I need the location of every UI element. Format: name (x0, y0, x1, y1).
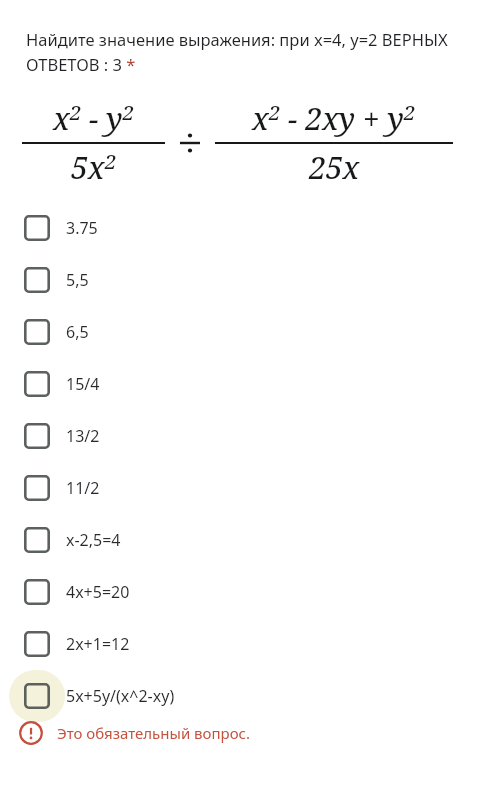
staticText: x2 − y2 (53, 98, 134, 139)
staticText: 6,5 (66, 321, 89, 343)
button[interactable]: 4x+5=20 (0, 566, 500, 618)
staticText: 25x (309, 147, 360, 188)
staticText: 3.75 (66, 217, 98, 239)
button[interactable]: 11/2 (0, 462, 500, 514)
button[interactable]: 5x+5y/(x^2-xy) (0, 670, 500, 722)
staticText: 11/2 (66, 477, 100, 499)
staticText: 5x2 (71, 147, 117, 188)
staticText: 2x+1=12 (66, 633, 130, 655)
staticText: 5x+5y/(x^2-xy) (66, 685, 175, 707)
staticText: x2 − 2xy + y2 (252, 98, 416, 139)
staticText: 13/2 (66, 425, 100, 447)
staticText: Это обязательный вопрос. (57, 723, 251, 743)
button[interactable]: 2x+1=12 (0, 618, 500, 670)
staticText: 5,5 (66, 269, 89, 291)
button[interactable]: 15/4 (0, 358, 500, 410)
button[interactable]: 5,5 (0, 254, 500, 306)
staticText: x-2,5=4 (66, 529, 121, 551)
button[interactable]: 3.75 (0, 202, 500, 254)
button[interactable]: x-2,5=4 (0, 514, 500, 566)
staticText: Найдите значение выражения: при x=4, y=2… (26, 28, 476, 76)
staticText: 15/4 (66, 373, 100, 395)
button[interactable]: 13/2 (0, 410, 500, 462)
staticText: 4x+5=20 (66, 581, 130, 603)
other: Error (19, 721, 43, 745)
button[interactable]: 6,5 (0, 306, 500, 358)
